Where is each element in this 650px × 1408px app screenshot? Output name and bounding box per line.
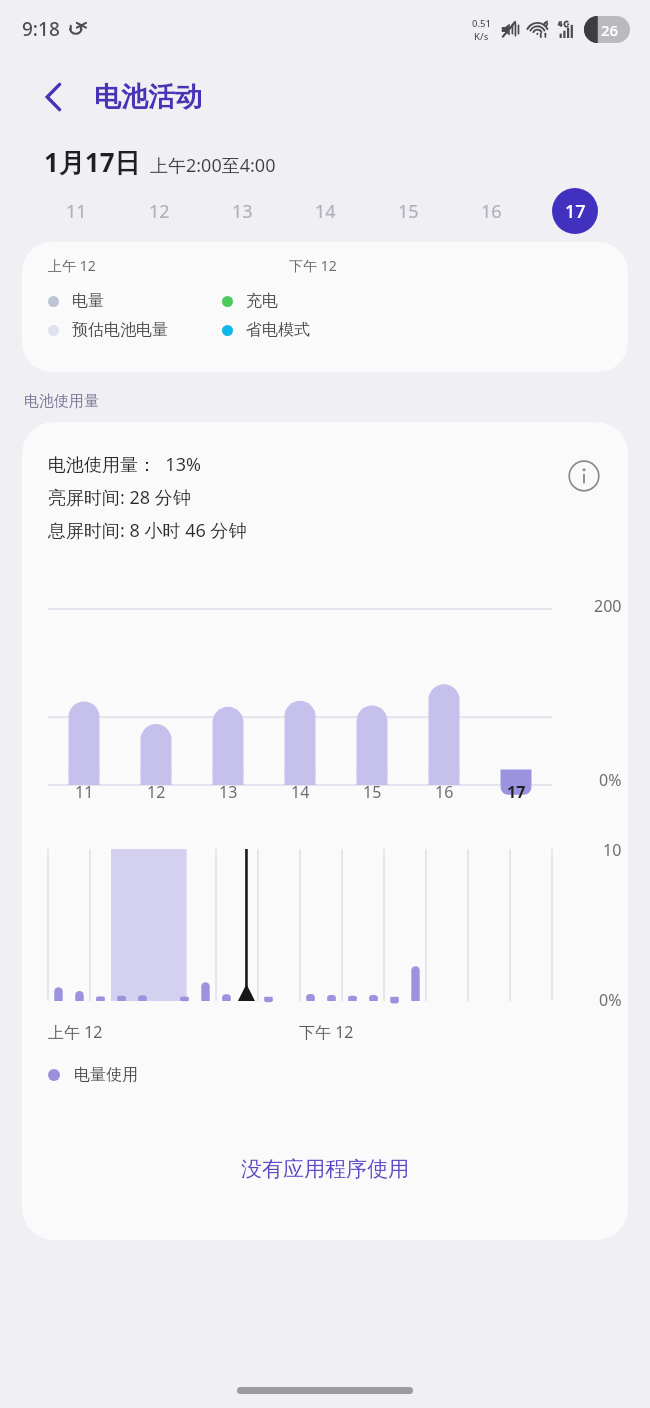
staticText: 上午2:00至4:00	[150, 153, 276, 178]
staticText: 11	[75, 781, 94, 803]
button[interactable]: 13	[201, 180, 284, 242]
staticText: 息屏时间: 8 小时 46 分钟	[48, 518, 247, 543]
staticText: 12	[149, 199, 170, 224]
button[interactable]: 上午 12	[22, 242, 628, 372]
staticText: K/s	[474, 30, 489, 43]
staticText: 电池使用量	[24, 392, 99, 411]
staticText: 预估电池电量	[72, 320, 168, 340]
button[interactable]: 17	[533, 180, 616, 242]
staticText: 电池活动	[94, 80, 202, 114]
staticText: 上午 12	[48, 256, 96, 275]
staticText: 16	[481, 199, 502, 224]
staticText: 电量使用	[74, 1065, 138, 1085]
staticText: 9:18	[22, 16, 60, 42]
staticText: 17	[565, 199, 586, 224]
staticText: 1月17日	[44, 144, 141, 180]
staticText: 亮屏时间: 28 分钟	[48, 485, 191, 510]
staticText: 下午 12	[299, 1021, 354, 1043]
staticText: 26	[601, 20, 619, 40]
staticText: 15	[398, 199, 419, 224]
staticText: 0%	[599, 769, 622, 791]
button[interactable]: 16	[450, 180, 533, 242]
staticText: 0.51	[472, 17, 491, 30]
button[interactable]: Information	[562, 454, 606, 498]
staticText: 15	[363, 781, 382, 803]
button[interactable]: 14	[284, 180, 367, 242]
staticText: 14	[315, 199, 336, 224]
staticText: 电量	[72, 291, 104, 311]
staticText: 13	[219, 781, 238, 803]
staticText: 14	[291, 781, 310, 803]
staticText: 充电	[246, 291, 278, 311]
staticText: 省电模式	[246, 320, 310, 340]
button[interactable]: 没有应用程序使用	[227, 1150, 423, 1188]
staticText: 13	[232, 199, 253, 224]
staticText: 0%	[599, 989, 622, 1011]
staticText: 12	[147, 781, 166, 803]
staticText: 没有应用程序使用	[241, 1156, 409, 1182]
staticText: 上午 12	[48, 1021, 103, 1043]
staticText: 17	[507, 781, 526, 803]
button[interactable]: 15	[367, 180, 450, 242]
button[interactable]: Back	[32, 75, 76, 119]
staticText: 11	[66, 199, 87, 224]
staticText: 电池使用量： 13%	[48, 452, 201, 477]
staticText: 200	[594, 595, 622, 617]
staticText: 下午 12	[289, 256, 337, 275]
button[interactable]: 11	[34, 180, 118, 242]
staticText: 10	[603, 839, 622, 861]
button[interactable]: 12	[118, 180, 201, 242]
staticText: 16	[435, 781, 454, 803]
